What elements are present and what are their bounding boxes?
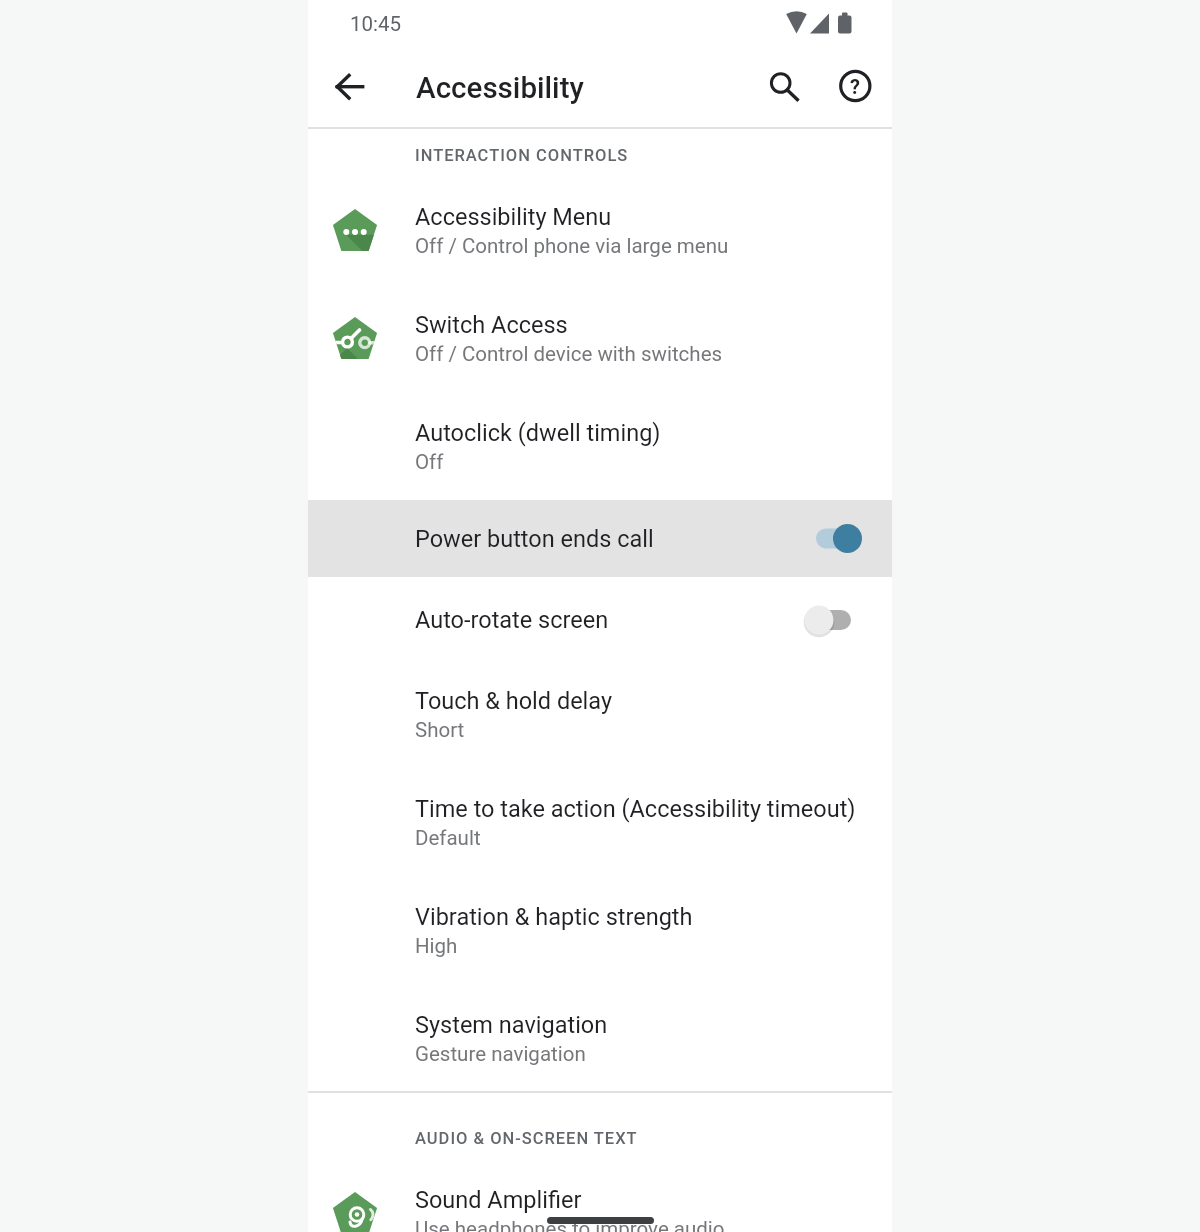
staticText: 10:45: [350, 12, 402, 36]
staticText: Gesture navigation: [415, 1042, 586, 1066]
staticText: Auto-rotate screen: [415, 606, 609, 634]
staticText: Default: [415, 826, 481, 850]
staticText: Switch Access: [415, 311, 568, 339]
button[interactable]: Switch Access: [308, 286, 892, 394]
staticText: Touch & hold delay: [415, 687, 613, 715]
staticText: Autoclick (dwell timing): [415, 419, 661, 447]
staticText: Off / Control device with switches: [415, 342, 723, 366]
button[interactable]: Autoclick (dwell timing): [308, 394, 892, 500]
button[interactable]: [756, 59, 804, 107]
button[interactable]: [325, 63, 373, 111]
staticText: High: [415, 934, 458, 958]
button[interactable]: Sound Amplifier: [308, 1161, 892, 1232]
staticText: Time to take action (Accessibility timeo…: [415, 795, 856, 823]
staticText: Off / Control phone via large menu: [415, 234, 729, 258]
staticText: Sound Amplifier: [415, 1186, 582, 1214]
staticText: AUDIO & ON-SCREEN TEXT: [415, 1129, 638, 1148]
button[interactable]: Touch & hold delay: [308, 662, 892, 770]
button[interactable]: Power button ends call: [308, 500, 892, 577]
button[interactable]: Auto-rotate screen: [308, 577, 892, 657]
button[interactable]: System navigation: [308, 986, 892, 1094]
staticText: Off: [415, 450, 444, 474]
staticText: Short: [415, 718, 465, 742]
button[interactable]: Accessibility Menu: [308, 178, 892, 286]
staticText: ?: [850, 75, 860, 98]
staticText: System navigation: [415, 1011, 608, 1039]
staticText: Accessibility: [416, 71, 584, 106]
button[interactable]: Time to take action (Accessibility timeo…: [308, 770, 892, 878]
button[interactable]: ?: [831, 62, 879, 110]
staticText: Use headphones to improve audio: [415, 1217, 725, 1232]
button[interactable]: Vibration & haptic strength: [308, 878, 892, 986]
staticText: Power button ends call: [415, 525, 654, 553]
staticText: Vibration & haptic strength: [415, 903, 693, 931]
staticText: INTERACTION CONTROLS: [415, 146, 629, 165]
staticText: Accessibility Menu: [415, 203, 612, 231]
